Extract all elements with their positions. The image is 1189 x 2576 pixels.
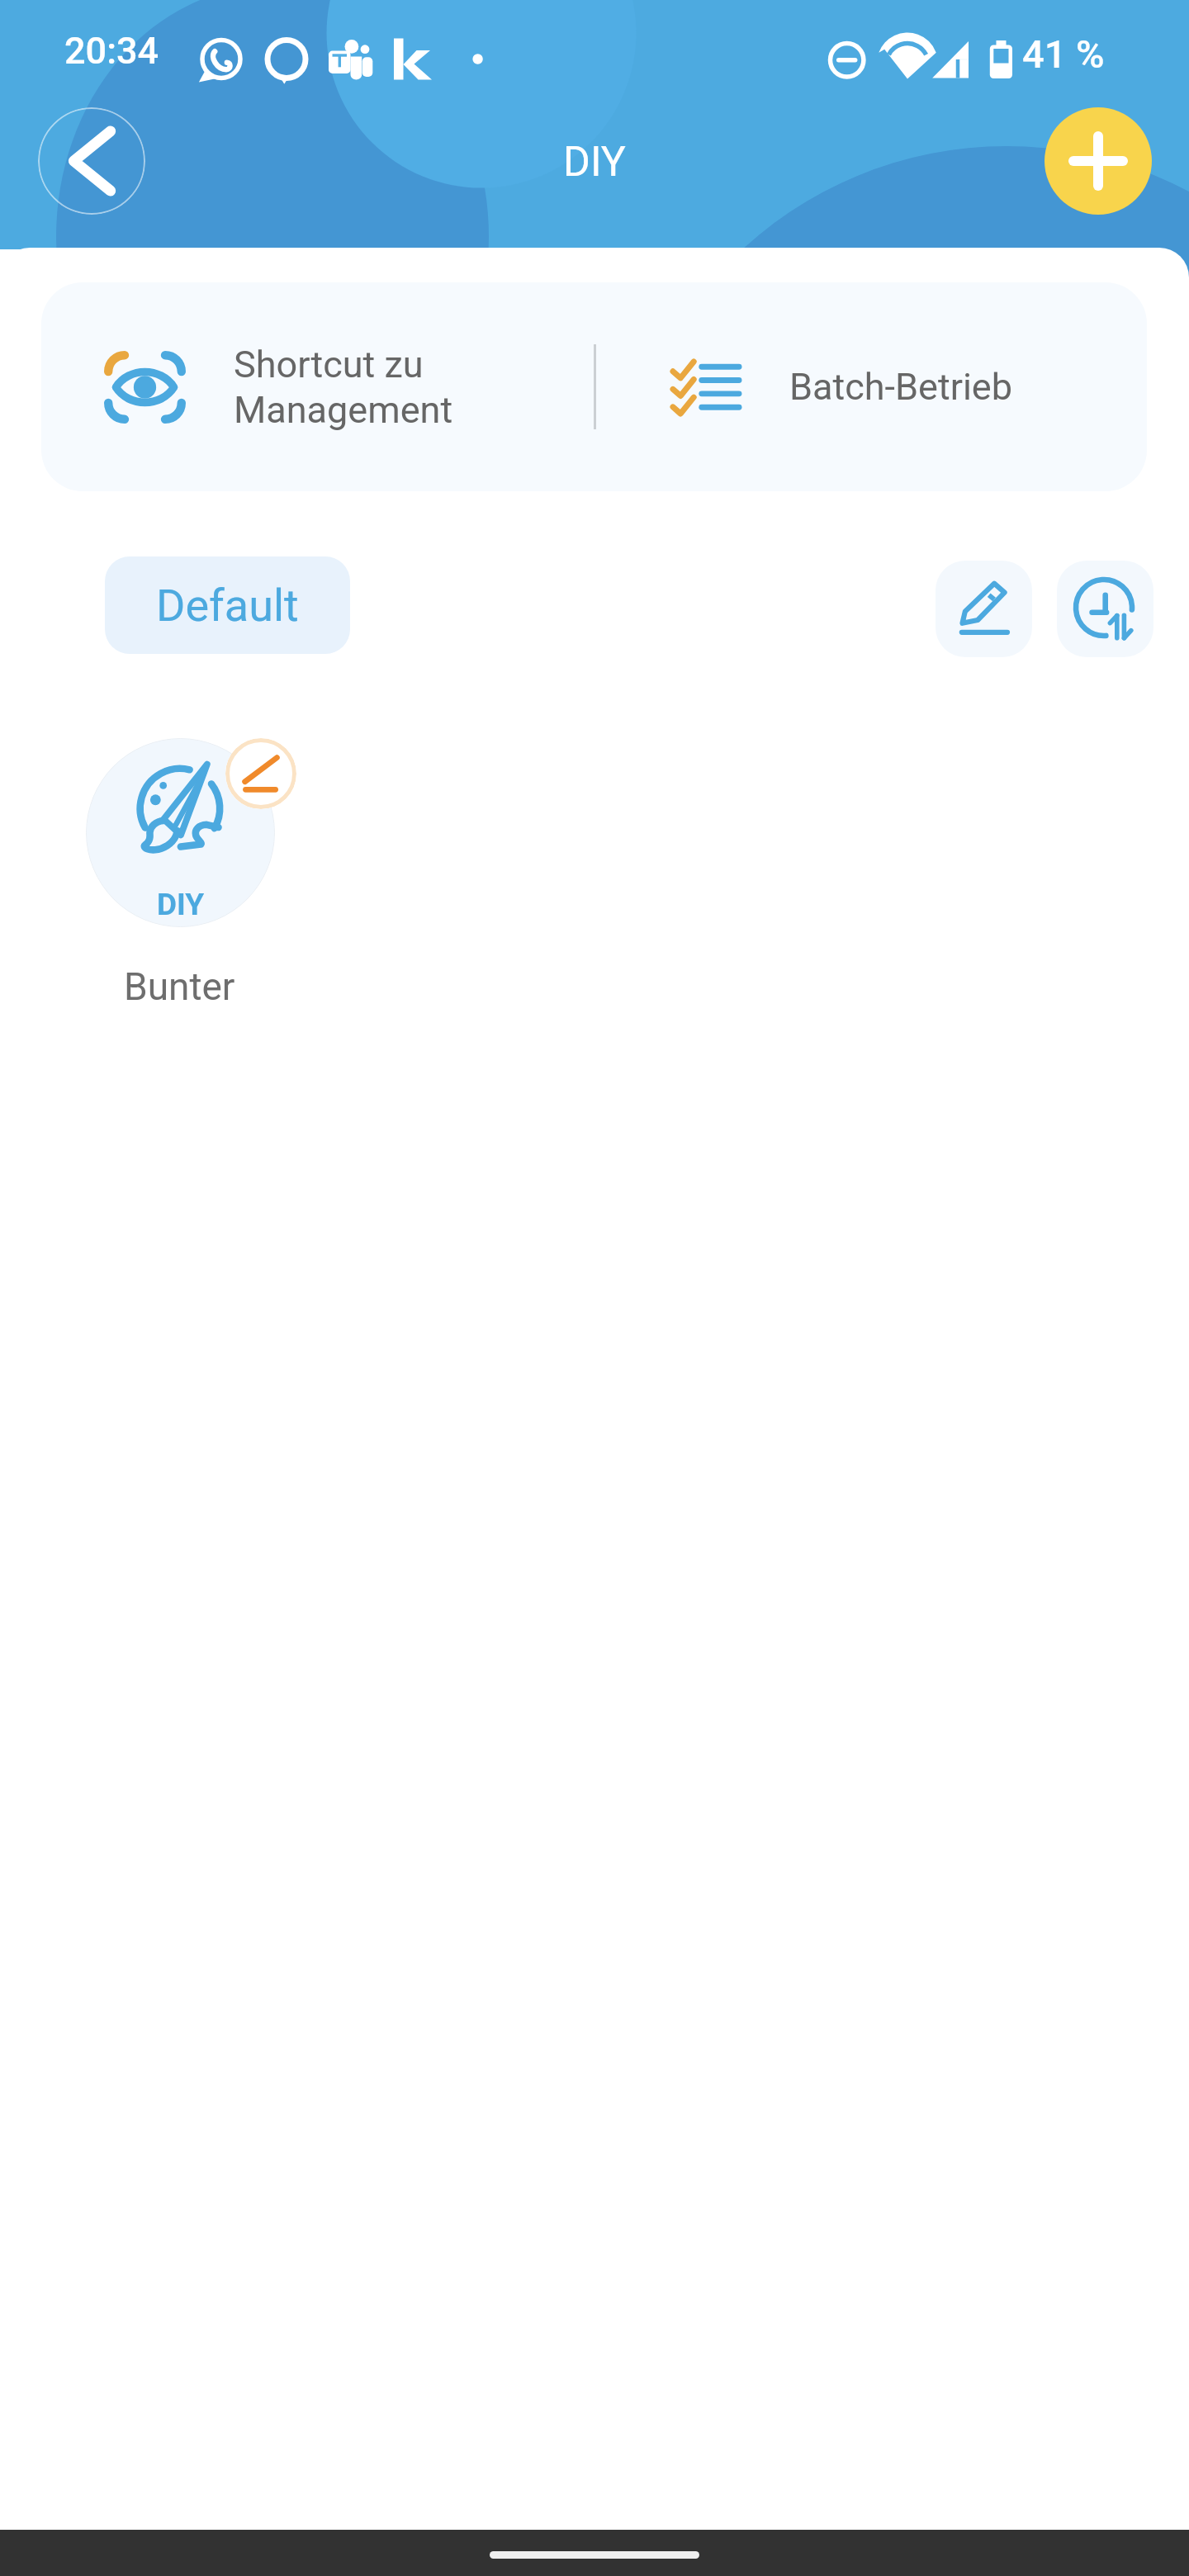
button[interactable]: Edit — [936, 561, 1032, 657]
staticText: DIY — [0, 138, 1189, 187]
button[interactable]: DIY — [41, 718, 318, 991]
staticText: 41 % — [1022, 31, 1105, 77]
button[interactable]: Default — [105, 556, 350, 654]
button[interactable]: Shortcut zu Management — [41, 282, 594, 491]
staticText: DIY — [157, 887, 205, 922]
staticText: 20:34 — [64, 29, 159, 73]
staticText: Default — [156, 580, 299, 632]
staticText: Bunter — [124, 964, 235, 1009]
button[interactable]: Add — [1045, 107, 1152, 215]
button[interactable]: Back — [38, 107, 145, 215]
staticText: Shortcut zu Management — [234, 343, 453, 432]
button[interactable]: Sort by time — [1057, 561, 1153, 657]
staticText: Batch-Betrieb — [789, 365, 1012, 409]
button[interactable]: Batch-Betrieb — [597, 282, 1012, 491]
